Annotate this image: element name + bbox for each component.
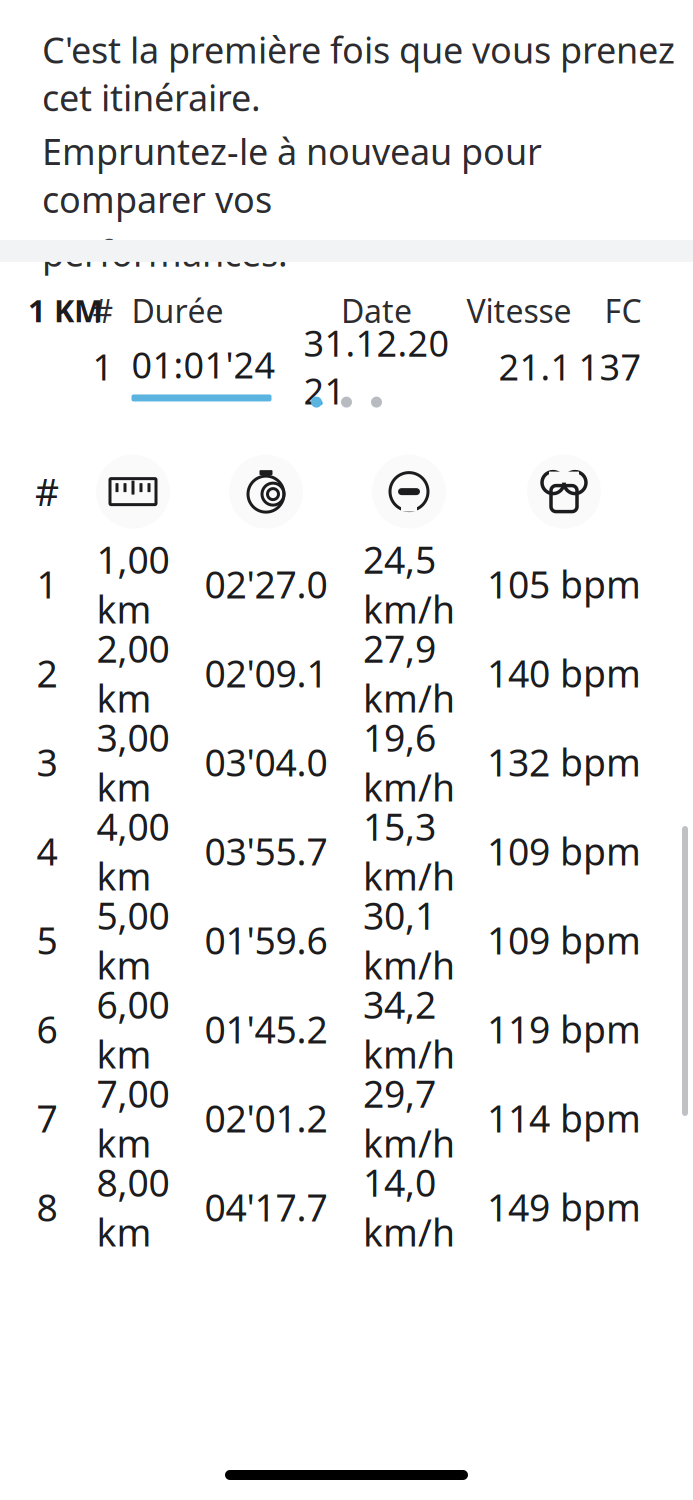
staticText: FC bbox=[604, 289, 641, 332]
staticText: 01'59.6 bbox=[204, 915, 327, 965]
staticText: 3,00 km bbox=[96, 712, 169, 812]
staticText: 119 bpm bbox=[487, 1004, 641, 1054]
staticText: 3 bbox=[36, 737, 57, 787]
staticText: 31.12.2021 bbox=[303, 319, 449, 414]
button[interactable]: 1 bbox=[0, 540, 693, 629]
button[interactable]: 8 bbox=[0, 1163, 693, 1252]
staticText: 34,2 km/h bbox=[363, 979, 455, 1079]
staticText: 7 bbox=[36, 1093, 57, 1143]
staticText: # bbox=[35, 467, 59, 516]
staticText: Empruntez-le à nouveau pour comparer vos bbox=[42, 127, 542, 223]
staticText: 109 bpm bbox=[487, 915, 641, 965]
staticText: 01'45.2 bbox=[204, 1004, 327, 1054]
staticText: 149 bpm bbox=[487, 1182, 641, 1232]
staticText: 29,7 km/h bbox=[363, 1068, 455, 1168]
button[interactable]: 4 bbox=[0, 807, 693, 896]
staticText: 02'27.0 bbox=[204, 559, 327, 609]
staticText: 132 bpm bbox=[487, 737, 641, 787]
staticText: Date bbox=[341, 289, 412, 332]
staticText: 19,6 km/h bbox=[363, 712, 455, 812]
button[interactable]: 5 bbox=[0, 896, 693, 985]
staticText: 03'04.0 bbox=[204, 737, 327, 787]
staticText: Vitesse bbox=[466, 289, 571, 332]
staticText: 21.1 bbox=[498, 343, 571, 390]
staticText: 6,00 km bbox=[96, 979, 169, 1079]
staticText: 114 bpm bbox=[487, 1093, 641, 1143]
staticText: C'est la première fois que vous prenez c… bbox=[42, 26, 675, 121]
staticText: 2 bbox=[36, 648, 57, 698]
button[interactable]: Time bbox=[198, 455, 334, 529]
staticText: 5,00 km bbox=[96, 890, 169, 990]
staticText: 03'55.7 bbox=[204, 826, 327, 876]
staticText: 8,00 km bbox=[96, 1157, 169, 1257]
staticText: 140 bpm bbox=[487, 648, 641, 698]
staticText: 5 bbox=[36, 915, 57, 965]
staticText: performances. bbox=[42, 229, 288, 277]
staticText: 1 bbox=[92, 343, 113, 390]
staticText: 04'17.7 bbox=[204, 1182, 327, 1232]
staticText: 1 bbox=[36, 559, 57, 609]
staticText: # bbox=[92, 289, 113, 332]
staticText: 01:01'24 bbox=[131, 341, 275, 388]
button[interactable]: Speed bbox=[334, 455, 484, 529]
staticText: 4 bbox=[36, 826, 57, 876]
staticText: 105 bpm bbox=[487, 559, 641, 609]
staticText: 02'09.1 bbox=[204, 648, 327, 698]
button[interactable]: Distance bbox=[68, 455, 198, 529]
staticText: 6 bbox=[36, 1004, 57, 1054]
button[interactable]: 2 bbox=[0, 629, 693, 718]
staticText: 8 bbox=[36, 1182, 57, 1232]
button[interactable]: 3 bbox=[0, 718, 693, 807]
staticText: 2,00 km bbox=[96, 623, 169, 723]
staticText: 02'01.2 bbox=[204, 1093, 327, 1143]
staticText: 27,9 km/h bbox=[363, 623, 455, 723]
button[interactable]: 7 bbox=[0, 1074, 693, 1163]
staticText: 15,3 km/h bbox=[363, 801, 455, 901]
staticText: 14,0 km/h bbox=[363, 1157, 455, 1257]
staticText: 7,00 km bbox=[96, 1068, 169, 1168]
staticText: 30,1 km/h bbox=[363, 890, 455, 990]
staticText: 137 bbox=[578, 343, 641, 390]
staticText: 24,5 km/h bbox=[363, 534, 455, 634]
staticText: 4,00 km bbox=[96, 801, 169, 901]
button[interactable]: Heart rate bbox=[484, 455, 644, 529]
staticText: 109 bpm bbox=[487, 826, 641, 876]
button[interactable]: 6 bbox=[0, 985, 693, 1074]
staticText: 1 KM bbox=[28, 290, 103, 331]
staticText: Durée bbox=[131, 289, 223, 332]
staticText: 1,00 km bbox=[96, 534, 169, 634]
